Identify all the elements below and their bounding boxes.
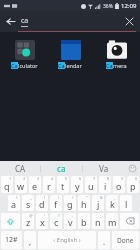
button[interactable]: Ca — [48, 37, 92, 71]
staticText: / — [72, 195, 74, 200]
staticText: \ — [16, 195, 18, 200]
staticText: ! — [44, 213, 46, 218]
button[interactable]: CA — [0, 161, 40, 175]
staticText: 12:09 — [121, 2, 137, 10]
staticText: , — [29, 236, 32, 247]
staticText: 12# — [5, 235, 18, 245]
staticText: s — [26, 198, 31, 210]
staticText: v — [68, 216, 73, 228]
staticText: 1 — [9, 176, 12, 181]
staticText: 4 — [51, 176, 54, 181]
staticText: c — [54, 216, 59, 228]
button[interactable]: ! — [36, 213, 48, 229]
button[interactable]: @ — [22, 213, 34, 229]
staticText: i — [104, 180, 107, 192]
button[interactable]: , — [106, 195, 118, 211]
button[interactable]: 12# — [1, 231, 22, 249]
staticText: Ca — [106, 62, 113, 69]
button[interactable]: Space — [38, 231, 96, 249]
button[interactable]: 8 — [99, 176, 111, 193]
button[interactable]: ) — [50, 195, 62, 211]
staticText: ca — [21, 16, 29, 26]
staticText: mera — [113, 62, 127, 69]
button[interactable]: " — [78, 195, 90, 211]
staticText: " — [86, 195, 88, 200]
staticText: . — [103, 236, 106, 247]
staticText: lendar — [65, 62, 82, 69]
staticText: f — [54, 198, 58, 210]
button[interactable]: 7 — [85, 176, 97, 193]
staticText: _ — [30, 195, 32, 200]
staticText: 5 — [65, 176, 68, 181]
button[interactable]: Ca — [94, 37, 138, 71]
button[interactable]: ? — [50, 213, 62, 229]
staticText: ; — [100, 213, 102, 218]
staticText: : — [86, 213, 88, 218]
button[interactable]: 5 — [57, 176, 69, 193]
button[interactable]: / — [64, 195, 76, 211]
staticText: n — [95, 216, 101, 228]
button[interactable]: Backspace — [120, 213, 139, 229]
staticText: k — [110, 198, 115, 210]
staticText: Va — [99, 163, 109, 174]
button[interactable]: 2 — [15, 176, 27, 193]
button[interactable]: 6 — [71, 176, 83, 193]
staticText: lculator — [18, 62, 38, 69]
button[interactable]: & — [92, 195, 104, 211]
button[interactable]: : — [78, 213, 90, 229]
staticText: 6 — [79, 176, 82, 181]
staticText: Done — [117, 236, 134, 245]
button[interactable]: 4 — [43, 176, 55, 193]
staticText: 0 — [135, 176, 138, 181]
button[interactable]: . — [98, 231, 110, 249]
staticText: 8 — [107, 176, 110, 181]
staticText: e — [32, 180, 38, 192]
button[interactable]: \ — [8, 195, 20, 211]
button[interactable]: , — [24, 231, 36, 249]
staticText: y — [75, 180, 80, 192]
staticText: p — [130, 180, 136, 192]
staticText: 7 — [93, 176, 96, 181]
button[interactable]: ( — [36, 195, 48, 211]
button[interactable]: l — [120, 195, 132, 211]
staticText: Ca — [11, 62, 18, 69]
button[interactable]: Emoji — [124, 161, 140, 175]
staticText: t — [61, 180, 65, 192]
staticText: b — [81, 216, 87, 228]
staticText: o — [116, 180, 122, 192]
staticText: ? — [58, 213, 60, 218]
button[interactable]: Shift — [1, 213, 20, 229]
staticText: w — [17, 180, 25, 192]
staticText: - — [72, 213, 74, 218]
staticText: h — [81, 198, 87, 210]
button[interactable]: 9 — [113, 176, 125, 193]
staticText: r — [47, 180, 51, 192]
button[interactable]: 1 — [1, 176, 13, 193]
button[interactable]: Ca — [2, 37, 46, 71]
staticText: ( — [44, 195, 46, 200]
staticText: 2 — [23, 176, 26, 181]
staticText: z — [26, 216, 31, 228]
button[interactable]: 3 — [29, 176, 41, 193]
staticText: & — [100, 195, 103, 200]
button[interactable]: Clear — [119, 11, 140, 31]
button[interactable]: Back — [0, 11, 21, 31]
staticText: j — [97, 198, 100, 210]
staticText: , — [114, 195, 116, 200]
button[interactable]: ca — [41, 161, 82, 175]
staticText: q — [4, 180, 10, 192]
button[interactable]: 0 — [127, 176, 139, 193]
staticText: x — [40, 216, 45, 228]
staticText: 3 — [37, 176, 40, 181]
staticText: a — [11, 198, 17, 210]
button[interactable]: ; — [92, 213, 104, 229]
staticText: 36% — [103, 3, 113, 10]
button[interactable]: ' — [106, 213, 118, 229]
button[interactable]: _ — [22, 195, 34, 211]
button[interactable]: Va — [83, 161, 124, 175]
button[interactable]: ca — [21, 11, 119, 31]
button[interactable]: Done — [112, 231, 139, 249]
button[interactable]: - — [64, 213, 76, 229]
staticText: ca — [57, 163, 66, 174]
staticText: l — [125, 198, 128, 210]
